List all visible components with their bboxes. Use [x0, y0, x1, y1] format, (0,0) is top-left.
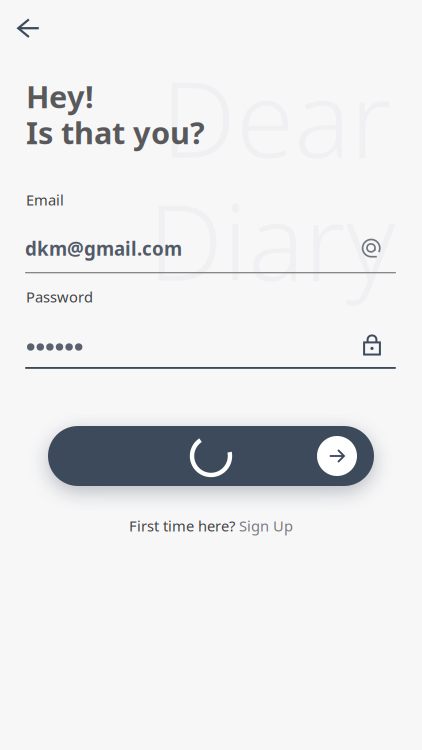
staticText: First time here? [129, 516, 235, 535]
button[interactable]: Back [0, 0, 54, 53]
button[interactable]: Sign in [48, 426, 374, 486]
button[interactable]: Sign Up [239, 516, 293, 535]
staticText: Email [26, 190, 64, 209]
staticText: Hey! [26, 76, 94, 117]
staticText: Password [26, 287, 93, 306]
staticText: Dear [161, 47, 392, 187]
staticText: Diary [148, 170, 395, 310]
staticText: Sign Up [239, 516, 293, 535]
staticText: dkm@gmail.com [25, 236, 182, 261]
staticText: Is that you? [26, 112, 205, 153]
